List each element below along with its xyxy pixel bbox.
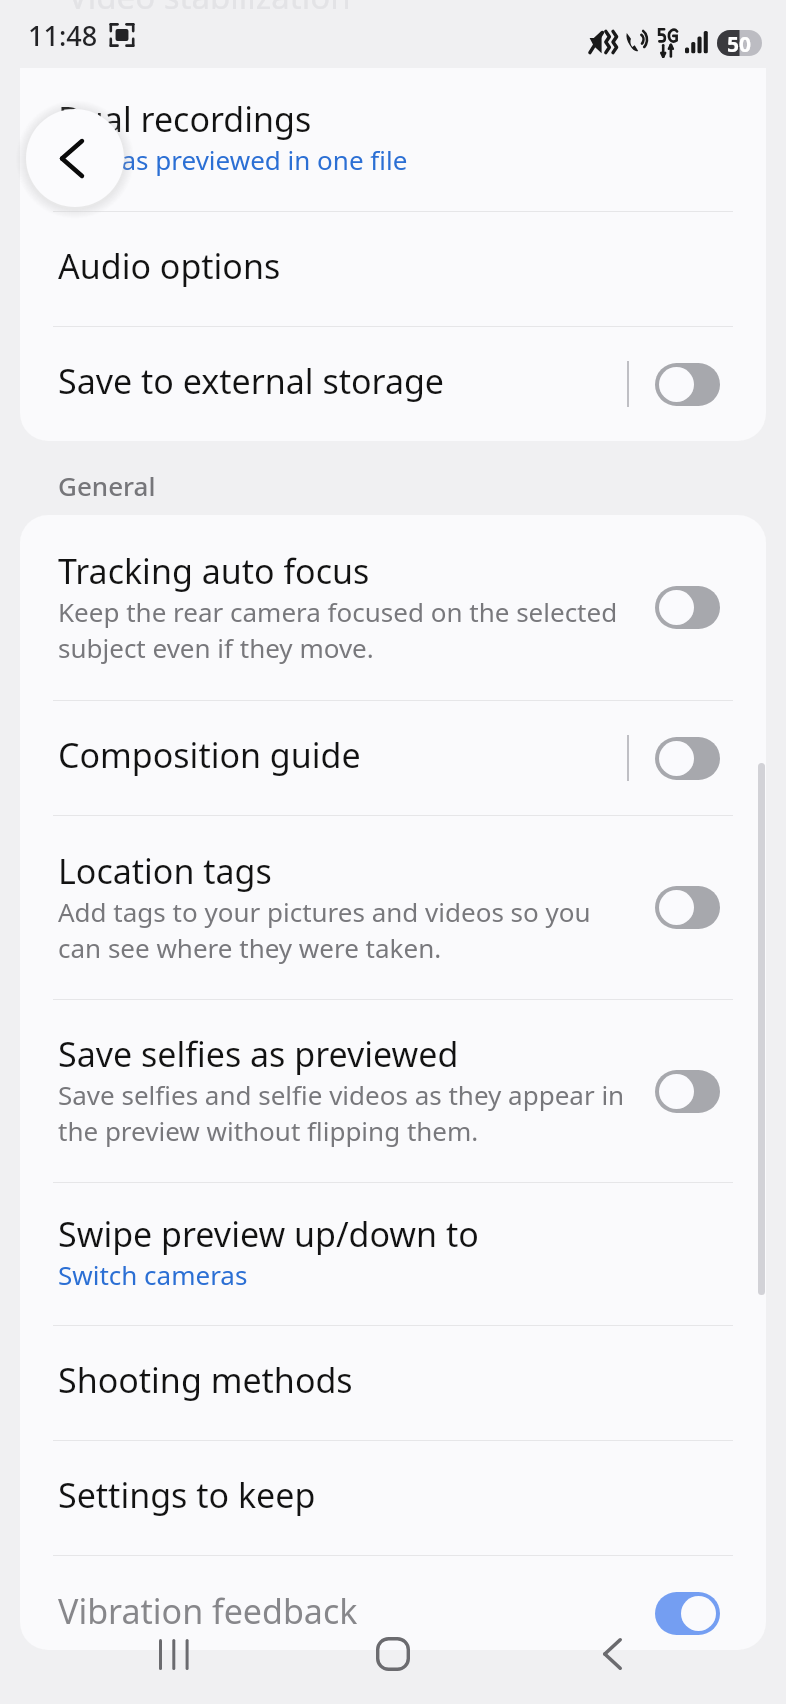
staticText: Dual recordings bbox=[58, 96, 312, 142]
staticText: Keep the rear camera focused on the sele… bbox=[58, 594, 618, 666]
button[interactable]: Location tags bbox=[20, 816, 766, 999]
button[interactable]: Dual recordings bbox=[20, 68, 766, 211]
staticText: Location tags bbox=[58, 848, 272, 894]
button[interactable]: Composition guide bbox=[20, 701, 766, 815]
button[interactable]: On bbox=[655, 1592, 720, 1635]
staticText: Composition guide bbox=[58, 732, 361, 778]
staticText: 11:48 bbox=[28, 17, 98, 54]
button[interactable]: Audio options bbox=[20, 212, 766, 326]
staticText: Save as previewed in one file bbox=[58, 142, 408, 177]
button[interactable]: Off bbox=[655, 737, 720, 780]
button[interactable]: Swipe preview up/down to bbox=[20, 1183, 766, 1325]
button[interactable]: Save selfies as previewed bbox=[20, 1000, 766, 1182]
button[interactable]: Off bbox=[655, 886, 720, 929]
staticText: General bbox=[58, 468, 156, 503]
staticText: Settings to keep bbox=[58, 1472, 316, 1518]
button[interactable]: Back bbox=[567, 1609, 657, 1699]
staticText: Add tags to your pictures and videos so … bbox=[58, 894, 591, 966]
staticText: Audio options bbox=[58, 243, 281, 289]
staticText: Save selfies as previewed bbox=[58, 1031, 459, 1077]
staticText: Switch cameras bbox=[58, 1257, 248, 1292]
staticText: Save selfies and selfie videos as they a… bbox=[58, 1077, 625, 1149]
staticText: 50 bbox=[727, 30, 752, 56]
staticText: Swipe preview up/down to bbox=[58, 1211, 479, 1257]
staticText: Shooting methods bbox=[58, 1357, 353, 1403]
button[interactable]: Tracking auto focus bbox=[20, 515, 766, 700]
staticText: Vibration feedback bbox=[58, 1588, 358, 1634]
button[interactable]: Save to external storage bbox=[20, 327, 766, 441]
button[interactable]: Recent apps bbox=[129, 1609, 219, 1699]
staticText: Video stabilization bbox=[68, 0, 351, 19]
button[interactable]: Home bbox=[348, 1609, 438, 1699]
button[interactable]: Settings to keep bbox=[20, 1441, 766, 1555]
button[interactable]: Shooting methods bbox=[20, 1326, 766, 1440]
staticText: Save to external storage bbox=[58, 358, 445, 404]
button[interactable]: Back bbox=[26, 109, 124, 207]
staticText: Tracking auto focus bbox=[58, 548, 370, 594]
button[interactable]: Off bbox=[655, 363, 720, 406]
button[interactable]: Off bbox=[655, 586, 720, 629]
button[interactable]: Vibration feedback bbox=[20, 1556, 766, 1650]
button[interactable]: Off bbox=[655, 1070, 720, 1113]
